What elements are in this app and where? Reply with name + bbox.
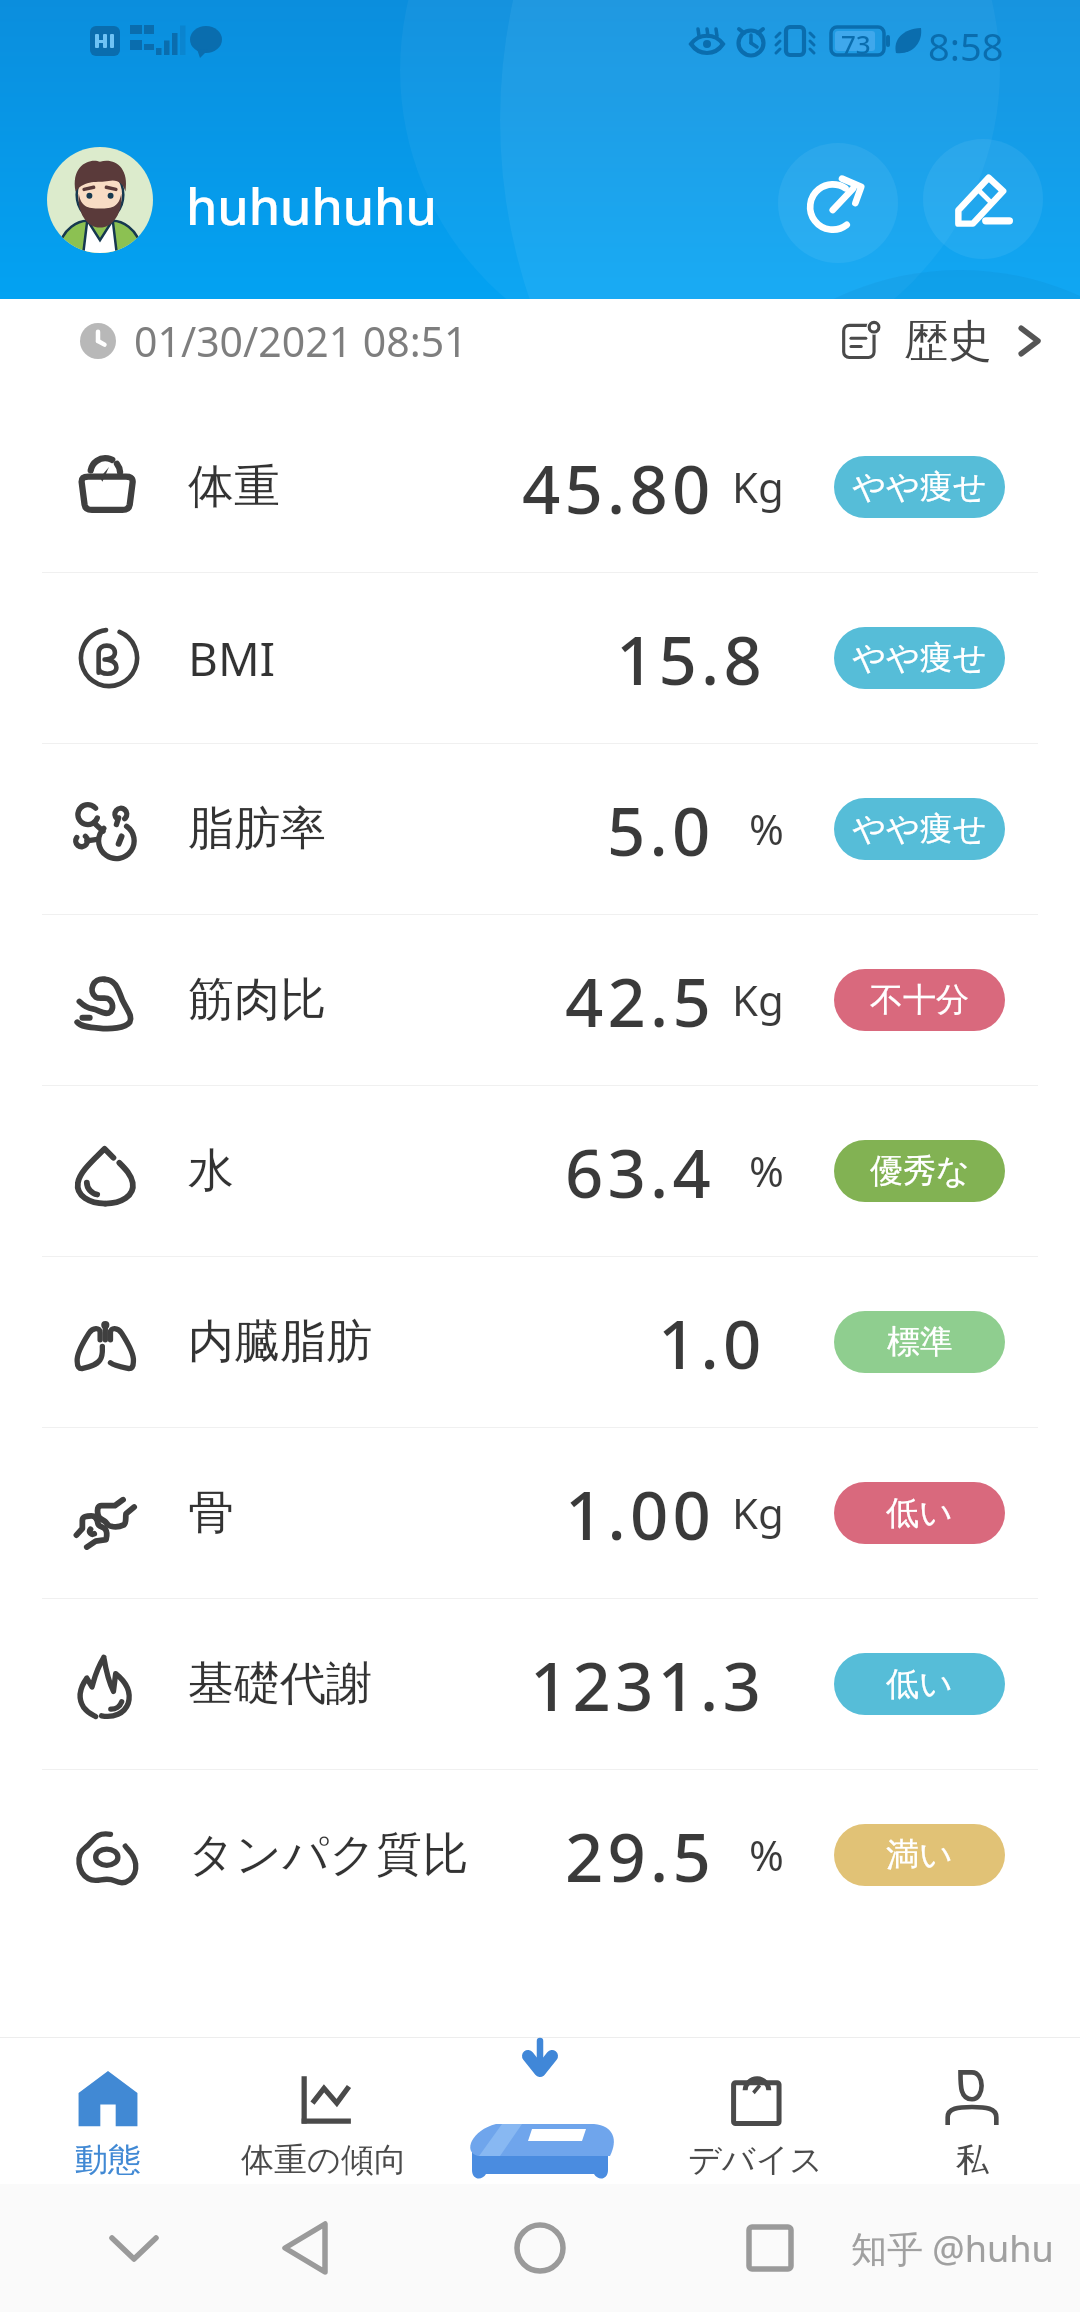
staticText: BMI xyxy=(188,627,276,690)
staticText: やや痩せ xyxy=(852,466,987,508)
staticText: 01/30/2021 08:51 xyxy=(134,313,468,369)
button[interactable]: 基礎代謝 xyxy=(0,1599,1080,1769)
staticText: 1.0 xyxy=(658,1297,766,1388)
button[interactable]: 体重 xyxy=(0,402,1080,572)
staticText: 63.4 xyxy=(565,1126,715,1217)
staticText: 標準 xyxy=(887,1321,953,1363)
button[interactable]: BMI xyxy=(0,573,1080,743)
staticText: 15.8 xyxy=(616,613,766,704)
staticText: 42.5 xyxy=(565,955,715,1046)
staticText: % xyxy=(749,800,784,857)
staticText: 水 xyxy=(188,1142,234,1200)
button[interactable]: 骨 xyxy=(0,1428,1080,1598)
button[interactable]: 脂肪率 xyxy=(0,744,1080,914)
button[interactable]: 内臓脂肪 xyxy=(0,1257,1080,1427)
staticText: 5.0 xyxy=(607,784,715,875)
staticText: Kg xyxy=(732,458,784,515)
staticText: % xyxy=(749,1142,784,1199)
button[interactable]: 動態 xyxy=(0,2037,216,2184)
staticText: 歴史 xyxy=(904,314,992,369)
staticText: huhuhuhu xyxy=(186,172,437,240)
staticText: 体重 xyxy=(188,458,280,516)
staticText: 内臓脂肪 xyxy=(188,1313,372,1371)
staticText: 8:58 xyxy=(928,20,1004,72)
staticText: 29.5 xyxy=(565,1810,715,1901)
staticText: やや痩せ xyxy=(852,808,987,850)
button[interactable]: Edit xyxy=(923,139,1043,259)
staticText: 動態 xyxy=(75,2139,141,2181)
staticText: 知乎 @huhu xyxy=(851,2224,1054,2273)
staticText: 体重の傾向 xyxy=(241,2139,407,2181)
button[interactable]: 筋肉比 xyxy=(0,915,1080,1085)
staticText: Kg xyxy=(732,971,784,1028)
button[interactable]: Measure xyxy=(432,2037,648,2184)
staticText: 骨 xyxy=(188,1484,234,1542)
staticText: 筋肉比 xyxy=(188,971,326,1029)
button[interactable]: 歴史 xyxy=(840,299,1050,383)
button[interactable]: 体重の傾向 xyxy=(216,2037,432,2184)
staticText: 不十分 xyxy=(870,979,969,1021)
staticText: 優秀な xyxy=(870,1150,970,1192)
staticText: 低い xyxy=(886,1663,953,1705)
staticText: Kg xyxy=(732,1484,784,1541)
staticText: % xyxy=(749,1826,784,1883)
staticText: 45.80 xyxy=(522,442,715,533)
button[interactable]: 水 xyxy=(0,1086,1080,1256)
button[interactable]: 私 xyxy=(864,2037,1080,2184)
staticText: デバイス xyxy=(688,2139,824,2181)
staticText: 1.00 xyxy=(565,1468,715,1559)
button[interactable]: Share xyxy=(778,143,898,263)
staticText: 基礎代謝 xyxy=(188,1655,372,1713)
staticText: 脂肪率 xyxy=(188,800,326,858)
button[interactable]: タンパク質比 xyxy=(0,1770,1080,1940)
button[interactable]: デバイス xyxy=(648,2037,864,2184)
staticText: 1231.3 xyxy=(530,1639,766,1730)
staticText: 73 xyxy=(841,26,871,61)
staticText: 私 xyxy=(956,2139,989,2181)
staticText: タンパク質比 xyxy=(188,1826,469,1884)
staticText: やや痩せ xyxy=(852,637,987,679)
staticText: 満い xyxy=(886,1834,953,1876)
staticText: 低い xyxy=(886,1492,953,1534)
